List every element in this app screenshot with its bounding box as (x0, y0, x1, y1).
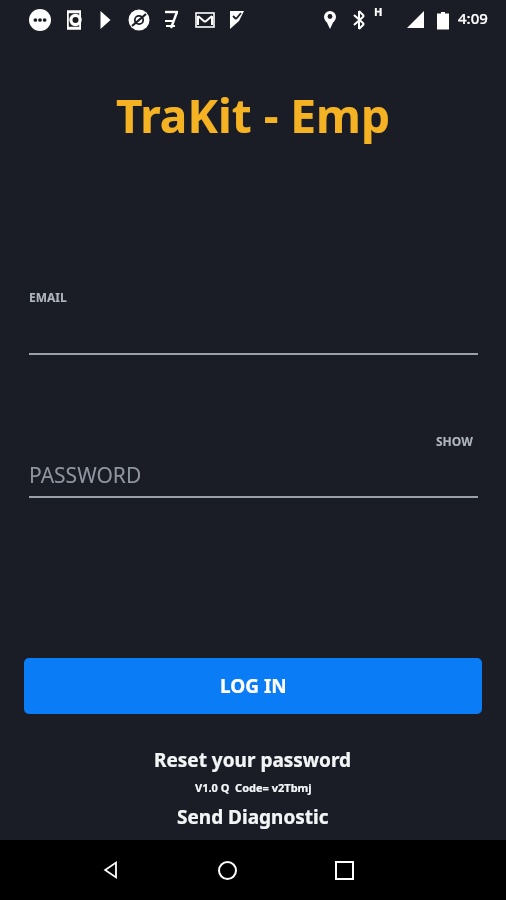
button[interactable]: Recent apps (320, 846, 368, 894)
button[interactable]: Send Diagnostic (0, 804, 506, 830)
staticText: Reset your password (154, 747, 352, 773)
staticText: V1.0 Q Code= v2Tbmj (195, 780, 312, 795)
button[interactable]: LOG IN (24, 658, 482, 714)
button[interactable]: SHOW (432, 430, 477, 452)
button[interactable]: EMAIL (29, 289, 478, 355)
staticText: 4:09 (458, 8, 488, 28)
button[interactable]: PASSWORD (29, 461, 478, 498)
staticText: PASSWORD (29, 461, 142, 490)
staticText: TraKit - Emp (0, 84, 506, 147)
staticText: SHOW (436, 433, 473, 449)
staticText: LOG IN (220, 673, 287, 699)
staticText: EMAIL (29, 289, 67, 305)
button[interactable]: Back (86, 846, 134, 894)
staticText: H (374, 4, 383, 19)
staticText: Send Diagnostic (177, 804, 329, 830)
button[interactable]: Home (203, 846, 251, 894)
button[interactable]: Reset your password (0, 747, 506, 773)
